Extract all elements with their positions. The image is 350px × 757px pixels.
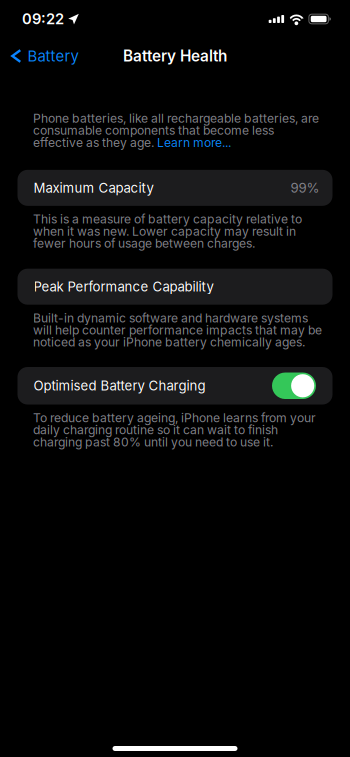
button[interactable]: Maximum Capacity	[0, 170, 350, 206]
button[interactable]: Learn more...	[157, 135, 231, 150]
button[interactable]: Battery	[0, 40, 87, 72]
staticText: Battery Health	[123, 47, 227, 65]
staticText: Maximum Capacity	[33, 180, 153, 196]
button[interactable]: Optimised Battery Charging	[0, 367, 350, 404]
staticText: Learn more...	[157, 135, 231, 150]
staticText: effective as they age.	[33, 135, 157, 150]
staticText: This is a measure of battery capacity re…	[33, 212, 302, 251]
staticText: To reduce battery ageing, iPhone learns …	[33, 410, 316, 449]
staticText: Battery	[28, 47, 79, 65]
staticText: Built-in dynamic software and hardware s…	[33, 311, 322, 349]
staticText: Peak Performance Capability	[33, 279, 213, 295]
button[interactable]: Peak Performance Capability	[0, 269, 350, 305]
staticText: Optimised Battery Charging	[33, 378, 205, 394]
staticText: 99%	[290, 180, 319, 196]
staticText: Phone batteries, like all rechargeable b…	[33, 111, 319, 138]
staticText: 09:22	[22, 10, 64, 28]
